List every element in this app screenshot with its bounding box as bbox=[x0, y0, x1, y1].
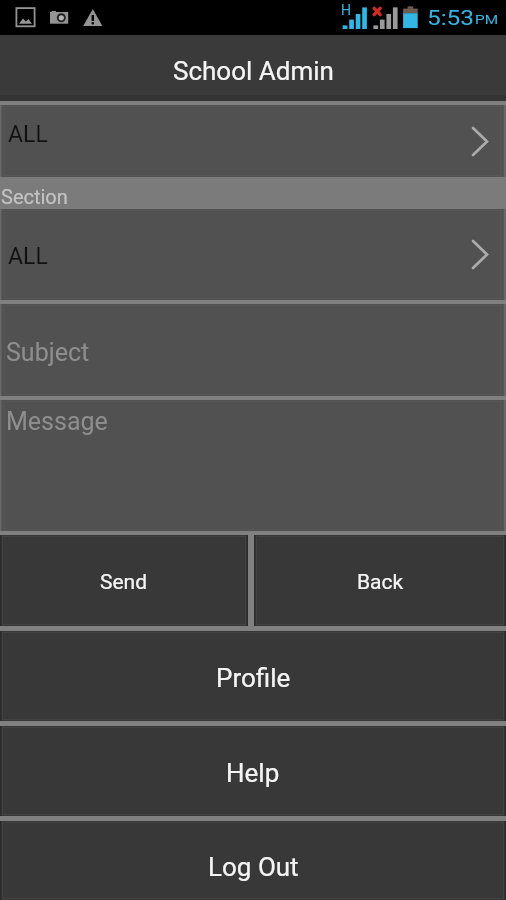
staticText: Subject bbox=[6, 338, 90, 367]
staticText: PM bbox=[475, 12, 499, 27]
button[interactable]: Profile bbox=[0, 631, 506, 721]
button[interactable]: Log Out bbox=[0, 821, 506, 900]
button[interactable]: Back bbox=[254, 535, 506, 626]
button[interactable]: Select class bbox=[0, 105, 506, 177]
staticText: Section bbox=[1, 185, 68, 208]
staticText: ALL bbox=[8, 243, 48, 270]
staticText: H bbox=[341, 2, 351, 18]
staticText: Message bbox=[6, 407, 108, 436]
staticText: Profile bbox=[216, 663, 291, 693]
button[interactable]: Select section bbox=[0, 209, 506, 300]
staticText: School Admin bbox=[173, 56, 334, 86]
staticText: ALL bbox=[8, 121, 48, 148]
staticText: Log Out bbox=[208, 852, 299, 882]
button[interactable]: Send bbox=[0, 535, 248, 626]
staticText: 5:53 bbox=[427, 6, 475, 29]
button[interactable]: Help bbox=[0, 726, 506, 816]
staticText: Back bbox=[357, 570, 404, 595]
button[interactable]: Subject bbox=[0, 304, 506, 396]
staticText: Help bbox=[226, 758, 280, 788]
staticText: Send bbox=[100, 570, 148, 595]
button[interactable]: Message bbox=[0, 400, 506, 531]
